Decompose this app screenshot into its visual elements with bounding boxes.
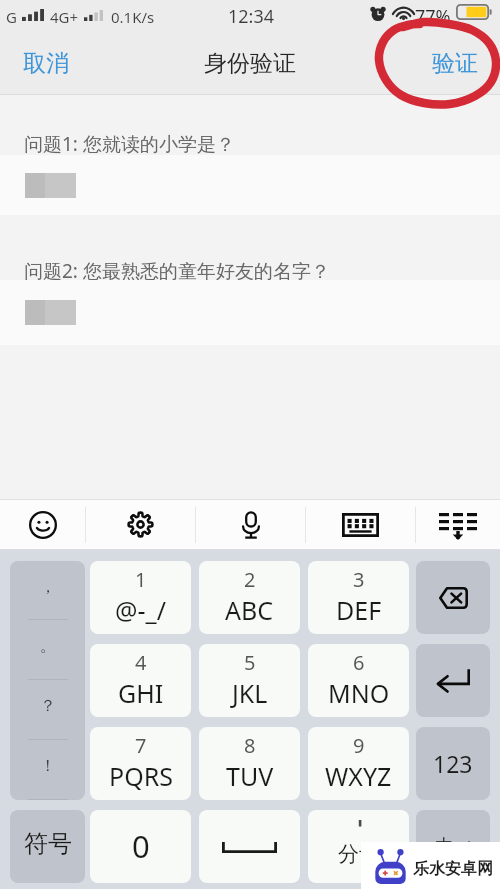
- button[interactable]: 分词: [308, 810, 409, 883]
- staticText: 2: [244, 566, 256, 593]
- staticText: 0.1K/s: [111, 7, 155, 27]
- staticText: ABC: [225, 593, 274, 627]
- button[interactable]: Settings: [86, 499, 195, 550]
- button[interactable]: 3: [308, 561, 409, 634]
- button[interactable]: 0: [90, 810, 191, 883]
- staticText: 取消: [23, 49, 69, 78]
- button[interactable]: 4: [90, 644, 191, 717]
- staticText: PQRS: [109, 759, 173, 793]
- staticText: ？: [40, 696, 56, 716]
- button[interactable]: Enter: [416, 644, 490, 717]
- button[interactable]: 9: [308, 727, 409, 800]
- button[interactable]: Space: [199, 810, 300, 883]
- button[interactable]: 符号: [10, 810, 85, 883]
- staticText: 身份验证: [204, 49, 296, 78]
- button[interactable]: 验证: [410, 28, 500, 95]
- button[interactable]: Voice input: [196, 499, 305, 550]
- staticText: 8: [244, 732, 256, 759]
- button[interactable]: 8: [199, 727, 300, 800]
- staticText: ，: [40, 577, 56, 597]
- button[interactable]: Backspace: [416, 561, 490, 634]
- staticText: 符号: [24, 829, 72, 859]
- button[interactable]: Emoji: [0, 499, 85, 550]
- button[interactable]: 6: [308, 644, 409, 717]
- button[interactable]: [0, 155, 500, 215]
- staticText: ！: [40, 756, 56, 776]
- staticText: 9: [353, 732, 365, 759]
- staticText: G: [6, 7, 17, 27]
- button[interactable]: 5: [199, 644, 300, 717]
- staticText: GHI: [118, 676, 164, 710]
- staticText: @-_/: [115, 593, 166, 627]
- button[interactable]: 7: [90, 727, 191, 800]
- button[interactable]: Punctuation: [10, 561, 85, 800]
- staticText: 7: [135, 732, 147, 759]
- staticText: 6: [353, 649, 365, 676]
- button[interactable]: 123: [416, 727, 490, 800]
- button[interactable]: 1: [90, 561, 191, 634]
- staticText: MNO: [328, 676, 390, 710]
- button[interactable]: Keyboard layout: [306, 499, 415, 550]
- staticText: JKL: [232, 676, 268, 710]
- staticText: 1: [135, 566, 147, 593]
- staticText: WXYZ: [325, 759, 392, 793]
- staticText: 12:34: [228, 4, 275, 29]
- staticText: 分词: [338, 841, 380, 867]
- staticText: 乐水安卓网: [413, 859, 493, 879]
- button[interactable]: Hide keyboard: [416, 499, 500, 550]
- button[interactable]: 取消: [0, 28, 92, 95]
- staticText: 问题1: 您就读的小学是？: [24, 131, 235, 157]
- staticText: 3: [353, 566, 365, 593]
- staticText: DEF: [336, 593, 382, 627]
- staticText: 中: [435, 835, 454, 859]
- staticText: 5: [244, 649, 256, 676]
- staticText: 验证: [432, 49, 478, 78]
- staticText: 4: [135, 649, 147, 676]
- button[interactable]: Switch language: [416, 810, 490, 883]
- staticText: 77%: [415, 4, 451, 29]
- staticText: 4G+: [50, 7, 79, 27]
- button[interactable]: [0, 280, 500, 345]
- staticText: 。: [40, 636, 56, 656]
- staticText: 123: [433, 748, 473, 779]
- staticText: 0: [132, 825, 150, 867]
- staticText: 问题2: 您最熟悉的童年好友的名字？: [24, 258, 330, 284]
- button[interactable]: 2: [199, 561, 300, 634]
- staticText: TUV: [226, 759, 274, 793]
